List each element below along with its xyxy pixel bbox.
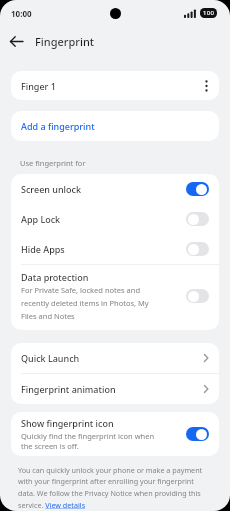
button[interactable]: Fingerprint animation: [11, 374, 219, 404]
staticText: Screen unlock: [21, 183, 186, 195]
staticText: Data protection: [21, 271, 89, 283]
staticText: Hide Apps: [21, 243, 186, 255]
button[interactable]: [186, 427, 209, 441]
button[interactable]: Screen unlock: [11, 174, 219, 204]
button[interactable]: Data protection: [11, 265, 219, 330]
staticText: For Private Safe, locked notes and recen…: [21, 285, 149, 321]
button[interactable]: [186, 212, 209, 226]
staticText: Fingerprint: [35, 34, 95, 49]
staticText: Add a fingerprint: [21, 120, 95, 132]
staticText: Use fingerprint for: [20, 158, 86, 168]
staticText: Finger 1: [21, 80, 56, 92]
button[interactable]: Finger 1: [11, 71, 219, 100]
button[interactable]: [186, 289, 209, 303]
button[interactable]: Hide Apps: [11, 234, 219, 264]
button[interactable]: Show fingerprint icon: [11, 412, 219, 456]
staticText: 10:00: [11, 8, 32, 19]
button[interactable]: [10, 36, 23, 47]
staticText: App Lock: [21, 213, 186, 225]
button[interactable]: App Lock: [11, 204, 219, 234]
staticText: Fingerprint animation: [21, 383, 203, 395]
staticText: Quickly find the fingerprint icon when t…: [21, 431, 155, 451]
button[interactable]: Add a fingerprint: [11, 111, 219, 141]
staticText: Quick Launch: [21, 352, 203, 364]
staticText: 100: [203, 9, 215, 17]
button[interactable]: You can quickly unlock your phone or mak…: [18, 465, 203, 510]
button[interactable]: [186, 182, 209, 196]
button[interactable]: Quick Launch: [11, 343, 219, 373]
staticText: Show fingerprint icon: [21, 417, 114, 429]
button[interactable]: [186, 242, 209, 256]
